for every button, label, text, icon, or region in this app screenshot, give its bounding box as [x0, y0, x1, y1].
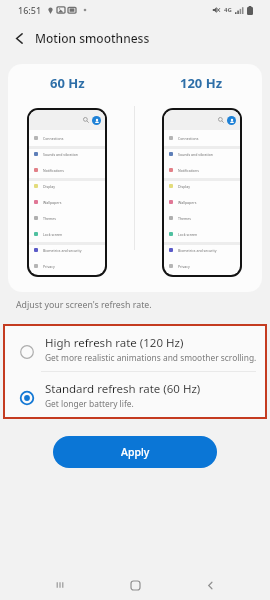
staticText: Notifications: [178, 168, 199, 173]
staticText: Privacy: [178, 264, 190, 269]
staticText: Wallpapers: [43, 200, 62, 205]
staticText: Sounds and vibration: [178, 152, 213, 157]
button[interactable]: Navigate up: [5, 24, 33, 52]
staticText: Wallpapers: [178, 200, 197, 205]
staticText: 4G: [224, 6, 232, 14]
staticText: Lock screen: [178, 232, 198, 237]
button[interactable]: Apply: [53, 436, 217, 468]
staticText: Biometrics and security: [178, 248, 217, 253]
button[interactable]: Home: [120, 570, 150, 600]
staticText: Sounds and vibration: [43, 152, 78, 157]
staticText: Notifications: [43, 168, 64, 173]
staticText: Motion smoothness: [35, 30, 150, 46]
staticText: Biometrics and security: [43, 248, 82, 253]
staticText: High refresh rate (120 Hz): [45, 335, 184, 351]
staticText: Apply: [121, 445, 150, 459]
staticText: Display: [43, 184, 55, 189]
staticText: Display: [178, 184, 190, 189]
staticText: 120 Hz: [180, 74, 223, 92]
staticText: Themes: [43, 216, 57, 221]
staticText: 60 Hz: [50, 74, 85, 92]
staticText: Connections: [178, 136, 199, 141]
staticText: Lock screen: [43, 232, 63, 237]
staticText: Privacy: [43, 264, 55, 269]
staticText: 16:51: [18, 4, 42, 16]
staticText: Connections: [43, 136, 64, 141]
staticText: Get longer battery life.: [45, 398, 134, 409]
button[interactable]: Recent apps: [45, 570, 75, 600]
staticText: Adjust your screen's refresh rate.: [16, 299, 152, 311]
staticText: Standard refresh rate (60 Hz): [45, 381, 201, 397]
staticText: Get more realistic animations and smooth…: [45, 352, 257, 363]
staticText: Themes: [178, 216, 192, 221]
button[interactable]: High refresh rate (120 Hz): [5, 326, 265, 371]
button[interactable]: Back: [195, 570, 225, 600]
button[interactable]: Standard refresh rate (60 Hz): [5, 372, 265, 417]
